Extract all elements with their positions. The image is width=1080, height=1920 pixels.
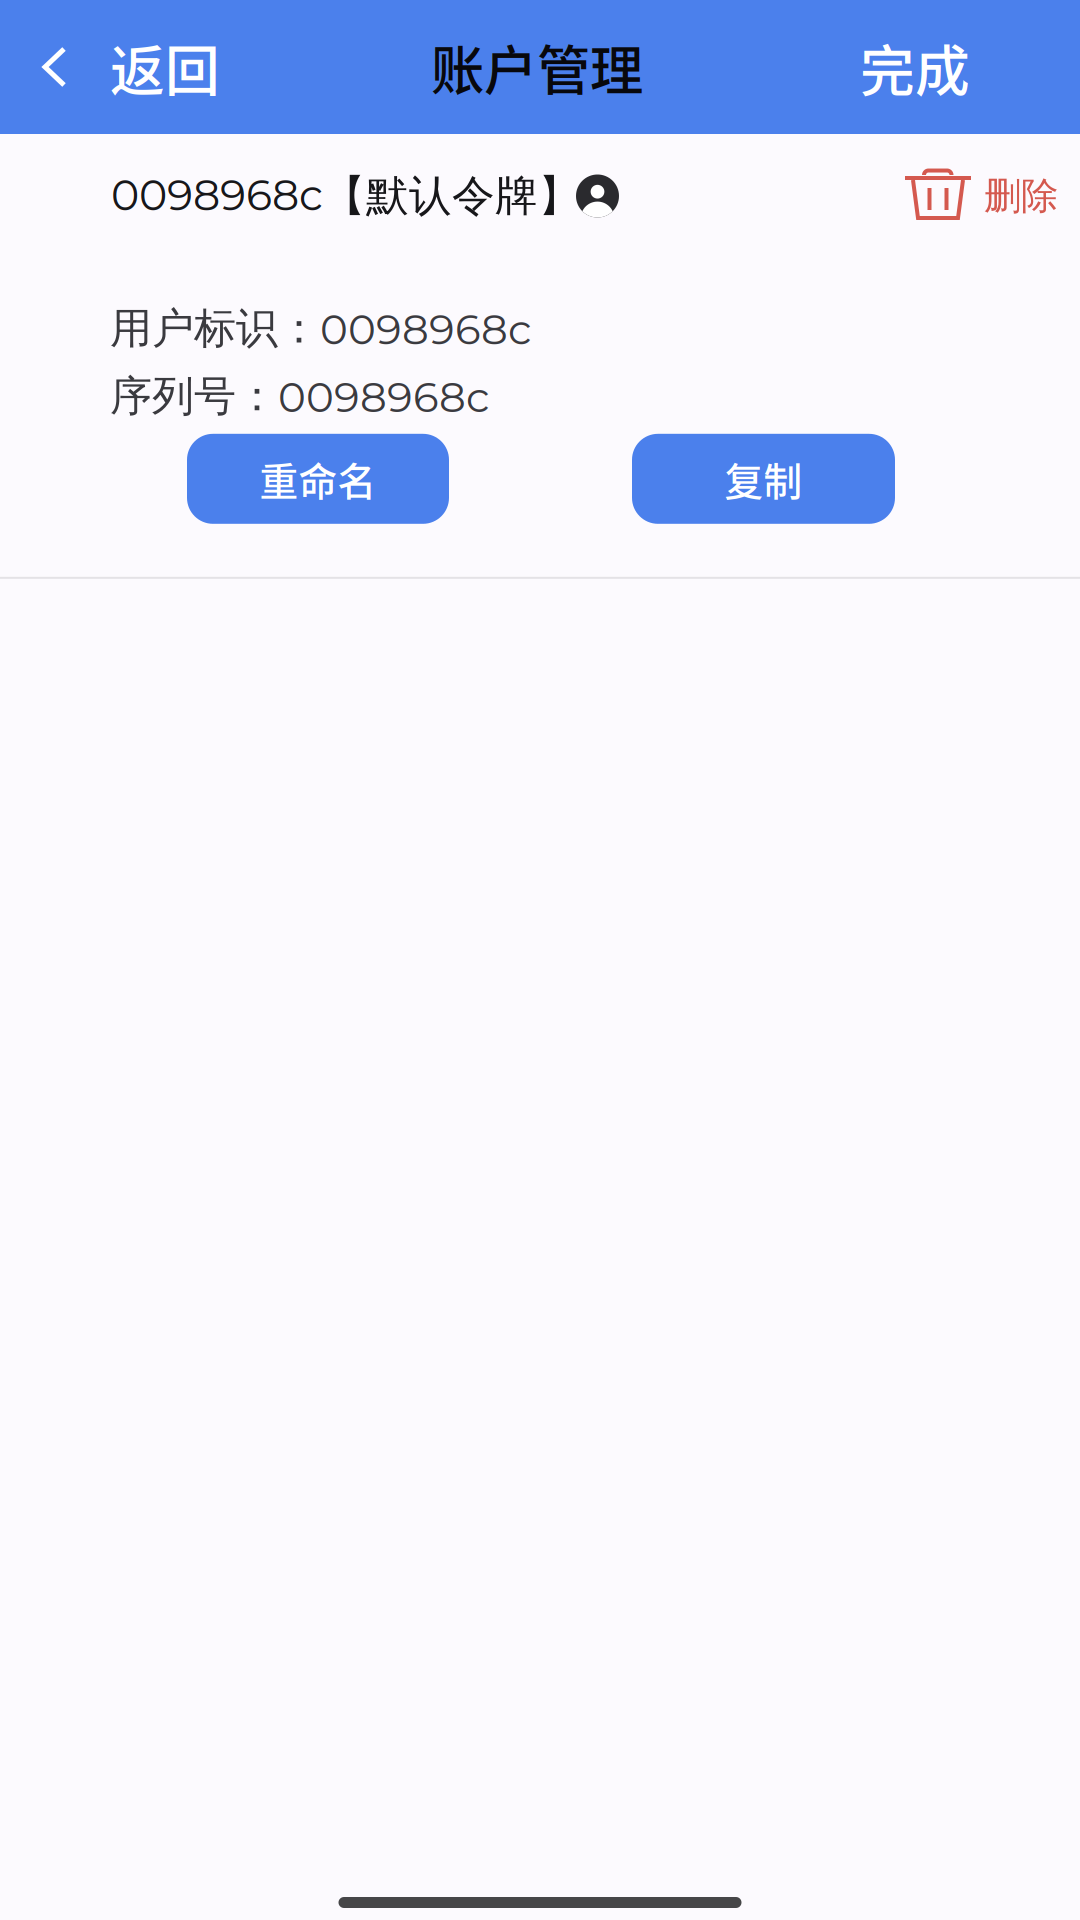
- staticText: 序列号：0098968c: [110, 370, 490, 423]
- button[interactable]: 删除: [903, 166, 1058, 226]
- staticText: 删除: [984, 172, 1058, 219]
- button[interactable]: 重命名: [187, 434, 449, 524]
- staticText: 返回: [110, 27, 220, 107]
- button[interactable]: 复制: [632, 434, 895, 524]
- staticText: 重命名: [259, 451, 376, 507]
- button[interactable]: 完成: [830, 0, 1080, 134]
- staticText: 0098968c【默认令牌】: [111, 169, 581, 223]
- staticText: 账户管理: [431, 28, 643, 106]
- staticText: 用户标识：0098968c: [110, 302, 532, 355]
- staticText: 复制: [724, 451, 802, 507]
- button[interactable]: 返回: [0, 0, 244, 134]
- staticText: 完成: [860, 27, 970, 107]
